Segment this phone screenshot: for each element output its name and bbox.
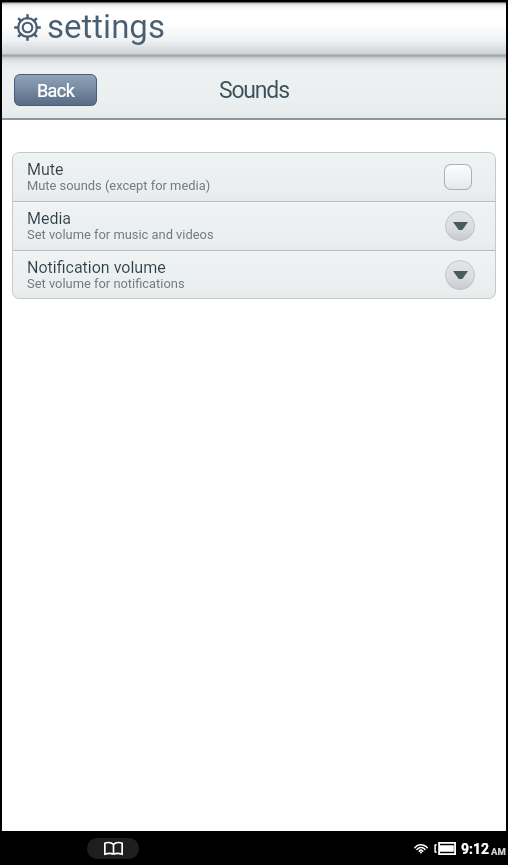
button[interactable]: Mute	[12, 152, 496, 201]
button[interactable]: Notification volume	[12, 251, 496, 299]
staticText: Mute sounds (except for media)	[27, 178, 211, 193]
staticText: Media	[27, 209, 72, 228]
staticText: settings	[47, 7, 165, 46]
button[interactable]: settings	[2, 0, 506, 57]
staticText: Mute	[27, 160, 64, 179]
button[interactable]: Expand	[445, 211, 475, 241]
staticText: Set volume for notifications	[27, 276, 185, 291]
staticText: 9:12	[461, 841, 490, 857]
staticText: Notification volume	[27, 258, 166, 277]
button[interactable]: Mute, off	[444, 164, 472, 190]
staticText: AM	[491, 846, 506, 857]
staticText: Back	[37, 80, 75, 101]
button[interactable]: Recent apps	[87, 838, 139, 859]
staticText: Sounds	[219, 77, 289, 104]
button[interactable]: Back	[14, 74, 97, 106]
button[interactable]: Media	[12, 202, 496, 250]
button[interactable]: Expand	[445, 260, 475, 290]
staticText: Set volume for music and videos	[27, 227, 214, 242]
